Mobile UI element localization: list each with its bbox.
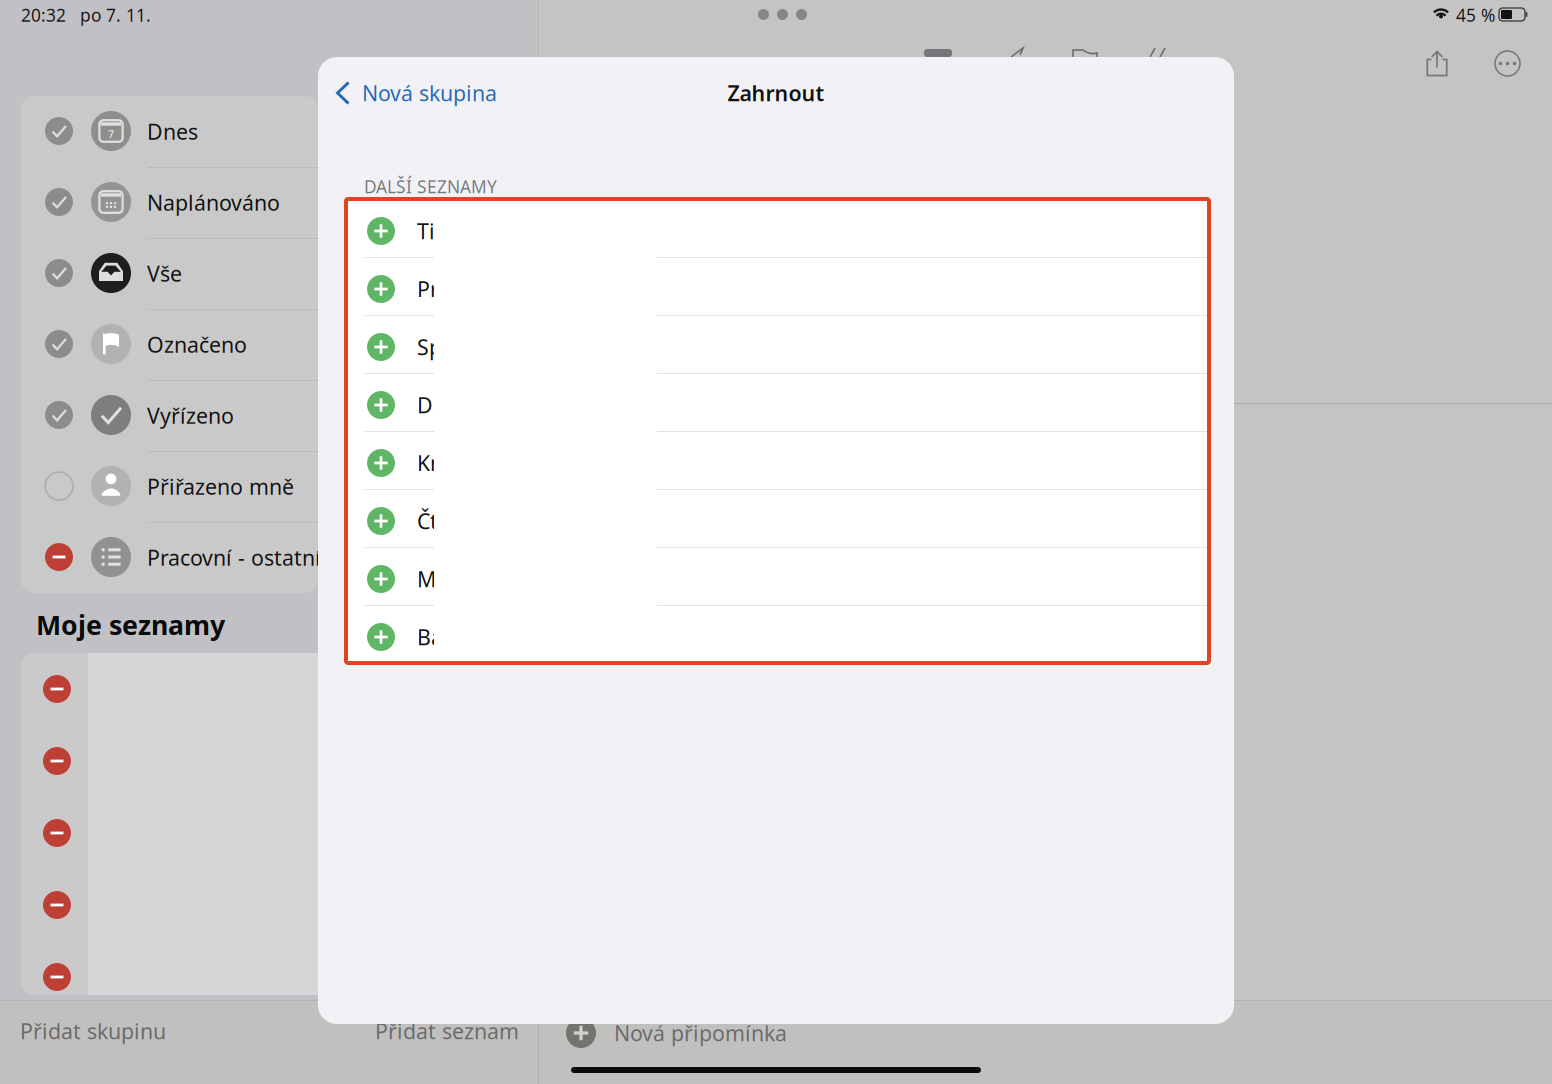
staticText: 20:32 xyxy=(21,3,66,26)
button[interactable] xyxy=(43,675,71,703)
button[interactable]: Mě xyxy=(346,547,1209,605)
staticText: Vyřízeno xyxy=(147,401,234,430)
button[interactable]: Pr xyxy=(346,257,1209,315)
staticText: Pracovní - ostatní xyxy=(147,543,321,572)
button[interactable]: Pracovní - ostatní xyxy=(21,522,318,593)
staticText: Dnes xyxy=(147,117,198,146)
staticText: Nová připomínka xyxy=(614,1019,787,1047)
staticText: Přidat seznam xyxy=(375,1017,519,1045)
button[interactable]: More options xyxy=(1494,50,1521,77)
button[interactable]: Čt xyxy=(346,489,1209,547)
button[interactable]: Přidat skupinu xyxy=(20,1009,180,1053)
staticText: 45 % xyxy=(1456,3,1495,26)
button[interactable] xyxy=(43,747,71,775)
staticText: Kn xyxy=(417,449,443,477)
staticText: Sp xyxy=(417,333,442,361)
staticText: 7 xyxy=(108,127,114,141)
button[interactable] xyxy=(43,891,71,919)
button[interactable]: Sp xyxy=(346,315,1209,373)
button[interactable]: Označeno xyxy=(21,309,318,380)
staticText: Přidat skupinu xyxy=(20,1017,166,1045)
staticText: DALŠÍ SEZNAMY xyxy=(364,175,497,198)
staticText: Čt xyxy=(417,507,438,535)
button[interactable] xyxy=(43,963,71,991)
button[interactable]: Kn xyxy=(346,431,1209,489)
button[interactable]: Naplánováno xyxy=(21,167,318,238)
staticText: Zahrnout xyxy=(727,79,824,107)
button[interactable] xyxy=(43,819,71,847)
staticText: Moje seznamy xyxy=(36,607,225,642)
staticText: Naplánováno xyxy=(147,188,280,217)
button[interactable]: Nová skupina xyxy=(318,71,518,115)
staticText: Mě xyxy=(417,565,448,593)
button[interactable]: Ti xyxy=(346,199,1209,257)
button[interactable]: 7 xyxy=(21,96,318,167)
staticText: Označeno xyxy=(147,330,247,359)
staticText: Přiřazeno mně xyxy=(147,472,294,501)
button[interactable]: Přidat seznam xyxy=(375,1009,535,1053)
staticText: Vše xyxy=(147,259,182,288)
staticText: po 7. 11. xyxy=(80,3,151,26)
staticText: Ti xyxy=(417,217,435,245)
button[interactable]: Share xyxy=(1426,50,1448,77)
button[interactable]: Dá xyxy=(346,373,1209,431)
staticText: Pr xyxy=(417,275,439,303)
button[interactable]: Vyřízeno xyxy=(21,380,318,451)
button[interactable]: Ba xyxy=(346,605,1209,663)
staticText: Nová skupina xyxy=(362,79,497,107)
button[interactable]: Vše xyxy=(21,238,318,309)
button[interactable]: Přiřazeno mně xyxy=(21,451,318,522)
button[interactable]: Nová připomínka xyxy=(566,1011,787,1055)
staticText: Dá xyxy=(417,391,445,419)
staticText: Ba xyxy=(417,623,443,651)
